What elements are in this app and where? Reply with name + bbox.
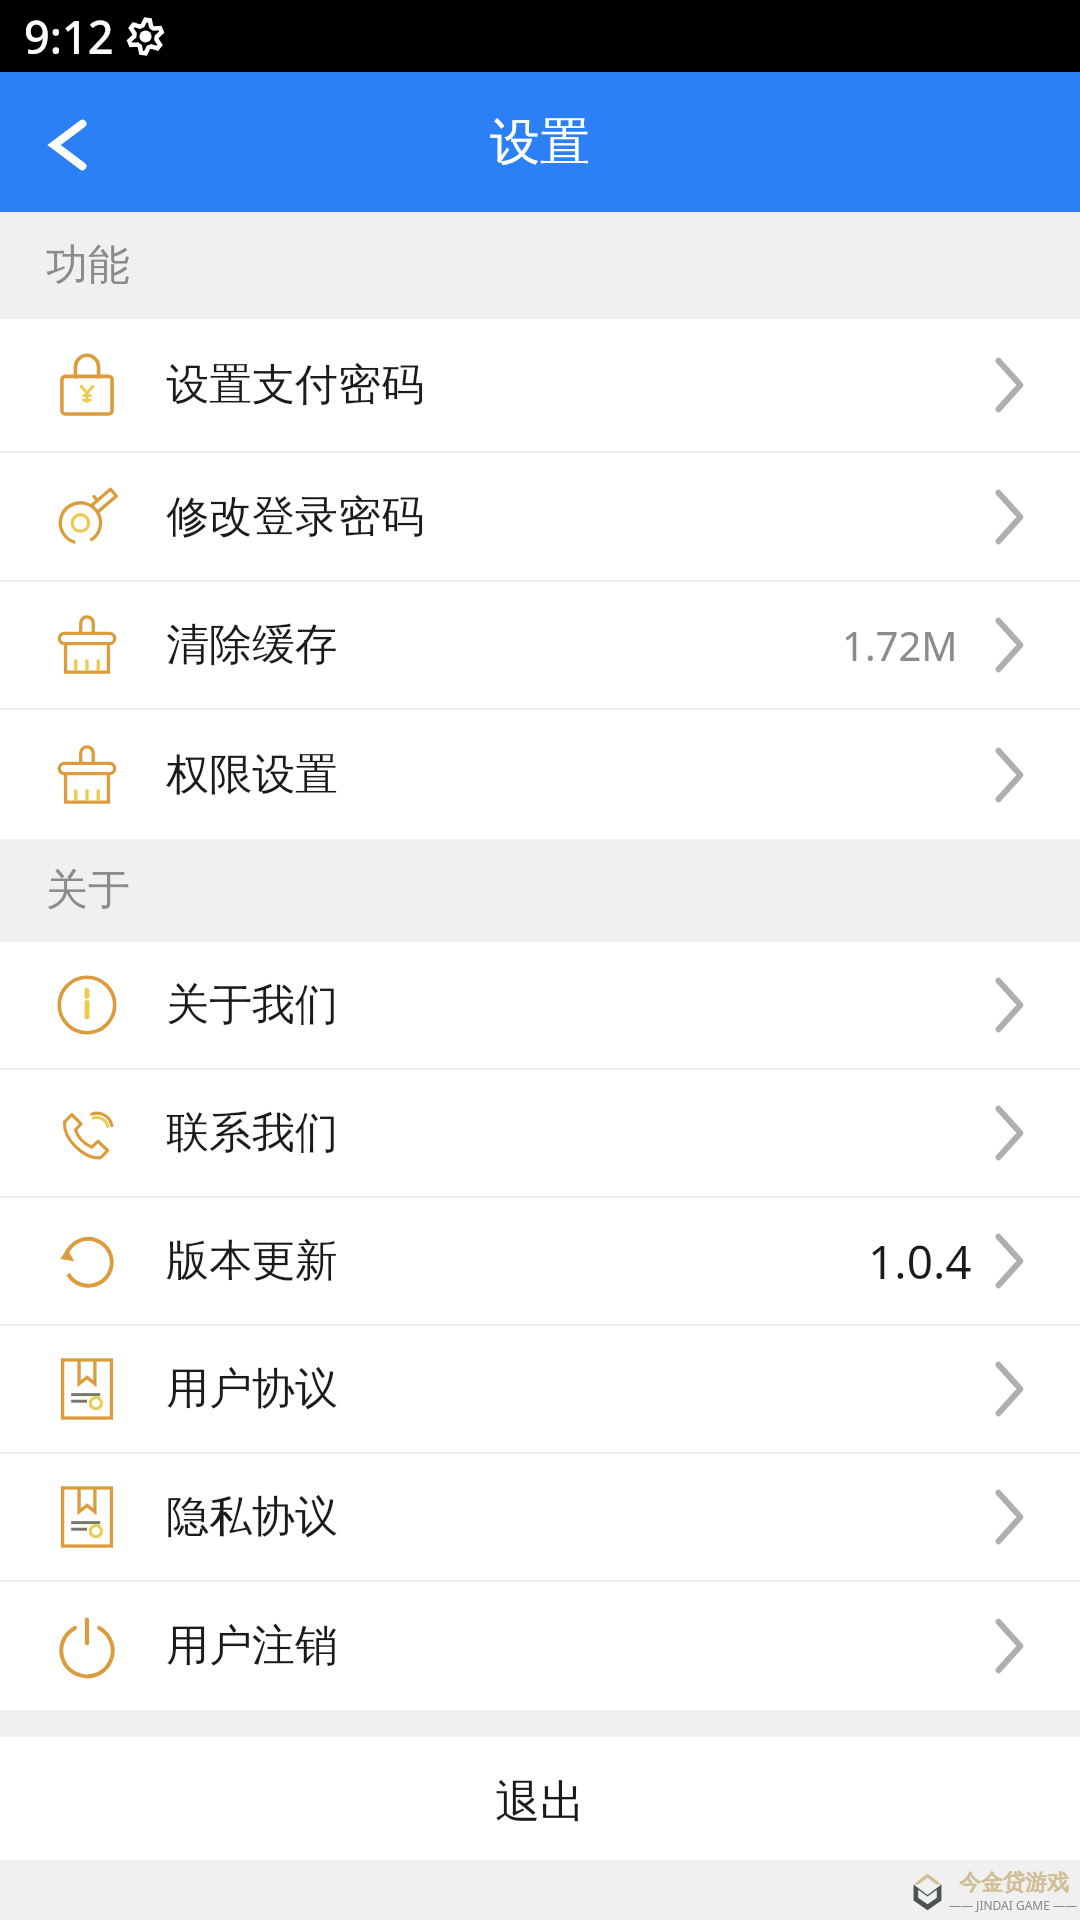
staticText: 退出 xyxy=(495,1774,585,1831)
staticText: 功能 xyxy=(46,239,130,292)
button[interactable]: 修改登录密码 xyxy=(0,453,1080,582)
button[interactable]: 权限设置 xyxy=(0,710,1080,839)
staticText: —— JINDAI GAME —— xyxy=(949,1897,1078,1913)
staticText: 1.72M xyxy=(842,618,958,672)
button[interactable]: 隐私协议 xyxy=(0,1454,1080,1582)
staticText: 权限设置 xyxy=(166,748,338,802)
button[interactable]: 关于我们 xyxy=(0,942,1080,1070)
staticText: 清除缓存 xyxy=(166,618,338,672)
staticText: 版本更新 xyxy=(166,1234,338,1288)
staticText: 关于我们 xyxy=(166,978,338,1032)
staticText: 关于 xyxy=(46,864,130,917)
button[interactable]: 用户协议 xyxy=(0,1326,1080,1454)
button[interactable]: 清除缓存 xyxy=(0,582,1080,710)
button[interactable]: 退出 xyxy=(0,1737,1080,1860)
button[interactable]: 设置支付密码 xyxy=(0,319,1080,453)
staticText: 设置 xyxy=(490,111,590,174)
staticText: 今金贷游戏 xyxy=(959,1869,1069,1897)
button[interactable]: 联系我们 xyxy=(0,1070,1080,1198)
staticText: 联系我们 xyxy=(166,1106,338,1160)
staticText: 设置支付密码 xyxy=(166,358,424,412)
staticText: 修改登录密码 xyxy=(166,490,424,544)
button[interactable]: 用户注销 xyxy=(0,1582,1080,1710)
staticText: 9:12 xyxy=(24,6,114,67)
staticText: 隐私协议 xyxy=(166,1490,338,1544)
staticText: 1.0.4 xyxy=(868,1230,972,1293)
staticText: 用户协议 xyxy=(166,1362,338,1416)
staticText: 用户注销 xyxy=(166,1619,338,1673)
button[interactable]: 版本更新 xyxy=(0,1198,1080,1326)
button[interactable]: Back xyxy=(0,72,131,212)
